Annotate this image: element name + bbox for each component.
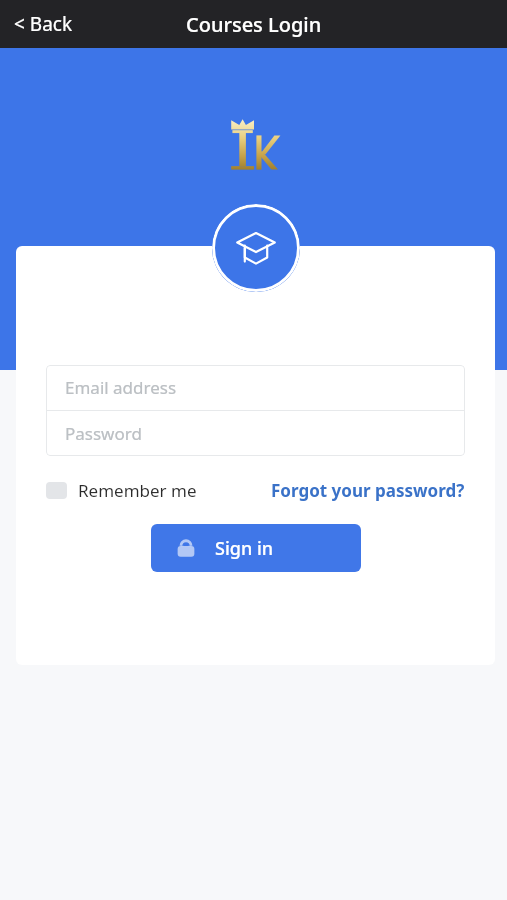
button[interactable]: Remember me (46, 479, 197, 502)
staticText: Remember me (78, 479, 197, 502)
button[interactable]: Forgot your password? (271, 479, 465, 502)
staticText: Sign in (215, 536, 274, 561)
staticText: Password (65, 422, 142, 445)
button[interactable]: Courses (212, 204, 300, 292)
staticText: Courses Login (186, 11, 322, 38)
button[interactable]: < Back (0, 3, 87, 45)
staticText: Email address (65, 376, 177, 399)
button[interactable]: Sign in (151, 524, 361, 572)
button[interactable]: Password (46, 411, 465, 456)
button[interactable]: Email address (46, 365, 465, 410)
staticText: < Back (14, 11, 73, 37)
staticText: Forgot your password? (271, 479, 465, 502)
